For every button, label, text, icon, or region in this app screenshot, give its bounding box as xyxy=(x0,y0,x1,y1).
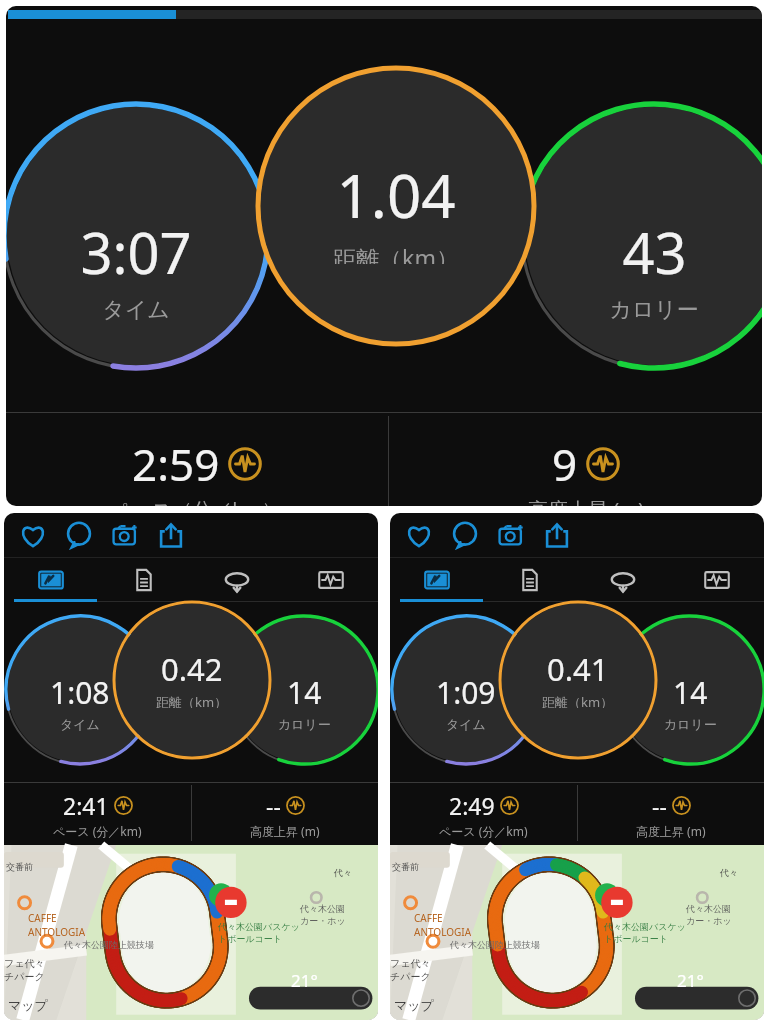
staticText: 14 xyxy=(287,672,322,713)
staticText: 2:49 xyxy=(449,790,495,821)
staticText: 43 xyxy=(622,214,687,290)
button[interactable]: Add photo xyxy=(488,513,534,557)
staticText: マップ xyxy=(394,997,434,1013)
staticText: 21° xyxy=(291,969,318,992)
staticText: ペース (分／km) xyxy=(53,823,142,839)
staticText: 21° xyxy=(677,969,704,992)
staticText: 0.41 xyxy=(547,648,609,690)
button[interactable]: Summary xyxy=(4,558,97,602)
staticText: 代々 xyxy=(720,867,738,878)
staticText: カロリー xyxy=(278,716,331,732)
staticText: タイム xyxy=(60,716,100,732)
button[interactable]: Analysis xyxy=(670,558,764,602)
staticText: 14 xyxy=(673,672,708,713)
staticText: 代々木公園 カー・ホッ xyxy=(686,903,732,927)
button[interactable]: Repeat xyxy=(576,558,670,602)
staticText: 9 xyxy=(552,434,578,494)
staticText: 交番前 xyxy=(392,861,419,872)
button[interactable]: Summary xyxy=(390,558,483,602)
staticText: -- xyxy=(266,790,281,821)
button[interactable]: Share xyxy=(148,513,194,557)
staticText: 距離（km） xyxy=(333,242,459,264)
button[interactable]: Like xyxy=(396,513,442,557)
staticText: 代々木公園 カー・ホッ xyxy=(300,903,346,927)
staticText: 代々木公園バスケッ トボールコート xyxy=(218,921,300,945)
staticText: カロリー xyxy=(609,296,699,324)
staticText: 高度上昇 (m) xyxy=(250,823,320,839)
staticText: カロリー xyxy=(664,716,717,732)
staticText: ペース（分／km） xyxy=(111,496,282,506)
staticText: 0.42 xyxy=(161,648,223,690)
staticText: マップ xyxy=(8,997,48,1013)
staticText: -- xyxy=(652,790,667,821)
button[interactable]: Comment xyxy=(56,513,102,557)
button[interactable]: Repeat xyxy=(190,558,284,602)
staticText: 代々木公園陸上競技場 xyxy=(64,939,154,950)
staticText: 2:41 xyxy=(63,790,109,821)
staticText: 3:07 xyxy=(80,214,192,290)
staticText: 距離（km） xyxy=(542,693,614,708)
staticText: フェ代々 チパーク xyxy=(4,957,45,983)
staticText: 高度上昇 (m) xyxy=(528,496,644,506)
staticText: 1.04 xyxy=(336,154,456,236)
staticText: CAFFE ANTOLOGIA xyxy=(28,911,86,939)
staticText: 1:08 xyxy=(50,672,110,713)
button[interactable]: Like xyxy=(10,513,56,557)
staticText: 代々 xyxy=(334,867,352,878)
button[interactable]: Share xyxy=(534,513,580,557)
staticText: 距離（km） xyxy=(156,693,228,708)
staticText: 交番前 xyxy=(6,861,33,872)
staticText: CAFFE ANTOLOGIA xyxy=(414,911,472,939)
button[interactable]: Laps xyxy=(97,558,190,602)
staticText: タイム xyxy=(102,296,170,324)
staticText: 高度上昇 (m) xyxy=(636,823,706,839)
staticText: 1:09 xyxy=(436,672,496,713)
button[interactable]: Analysis xyxy=(284,558,378,602)
staticText: タイム xyxy=(446,716,486,732)
staticText: 代々木公園バスケッ トボールコート xyxy=(604,921,686,945)
staticText: ペース (分／km) xyxy=(439,823,528,839)
button[interactable]: Add photo xyxy=(102,513,148,557)
button[interactable]: Laps xyxy=(483,558,576,602)
button[interactable]: Comment xyxy=(442,513,488,557)
staticText: 2:59 xyxy=(132,434,220,494)
staticText: フェ代々 チパーク xyxy=(390,957,431,983)
staticText: 代々木公園陸上競技場 xyxy=(450,939,540,950)
